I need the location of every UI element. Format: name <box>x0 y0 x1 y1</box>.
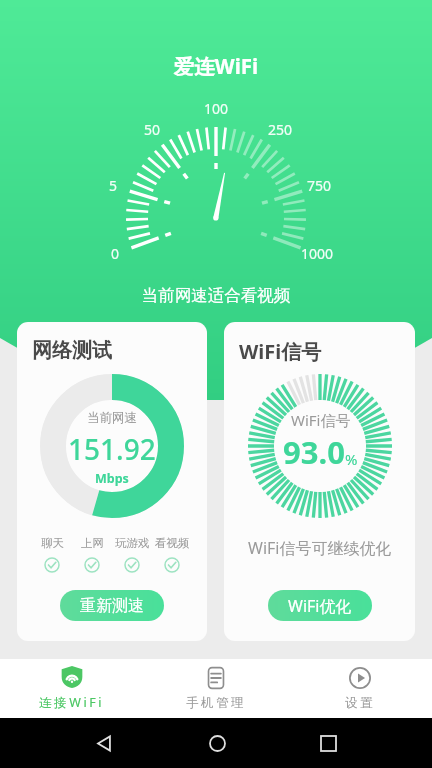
staticText: 爱连WiFi <box>0 52 432 80</box>
staticText: 聊天 <box>41 536 64 550</box>
staticText: 151.92 <box>68 430 156 468</box>
button[interactable]: 手机管理 <box>144 659 288 718</box>
staticText: WiFi优化 <box>288 595 352 617</box>
staticText: 93.0 <box>283 431 345 473</box>
staticText: 1000 <box>301 244 334 263</box>
staticText: 设置 <box>345 695 376 711</box>
button[interactable]: 重新测速 <box>60 590 164 621</box>
staticText: 50 <box>144 120 161 139</box>
staticText: 5 <box>109 176 118 195</box>
button[interactable]: 设置 <box>288 659 432 718</box>
staticText: 250 <box>268 120 293 139</box>
staticText: 当前网速 <box>87 410 137 426</box>
staticText: 上网 <box>81 536 104 550</box>
button[interactable]: Back <box>96 735 113 752</box>
staticText: WiFi信号 <box>239 338 322 365</box>
staticText: 连接WiFi <box>39 694 105 711</box>
button[interactable]: 聊天 <box>32 536 72 573</box>
staticText: 网络测试 <box>32 338 112 363</box>
staticText: 看视频 <box>155 536 190 550</box>
staticText: 750 <box>307 176 332 195</box>
button[interactable]: 连接WiFi <box>0 659 144 718</box>
staticText: Mbps <box>95 470 129 487</box>
staticText: 0 <box>111 244 120 263</box>
staticText: 100 <box>204 99 229 118</box>
button[interactable]: 玩游戏 <box>112 536 152 573</box>
button[interactable]: Recents <box>321 736 336 751</box>
button[interactable]: 上网 <box>72 536 112 573</box>
staticText: 玩游戏 <box>115 536 150 550</box>
button[interactable]: WiFi优化 <box>268 590 372 621</box>
button[interactable]: Home <box>209 735 226 752</box>
staticText: WiFi信号 <box>291 410 351 430</box>
staticText: % <box>345 449 358 469</box>
button[interactable]: 看视频 <box>152 536 192 573</box>
staticText: 手机管理 <box>186 695 247 711</box>
staticText: WiFi信号可继续优化 <box>248 537 392 559</box>
staticText: 重新测速 <box>80 596 144 616</box>
staticText: 当前网速适合看视频 <box>0 285 432 306</box>
